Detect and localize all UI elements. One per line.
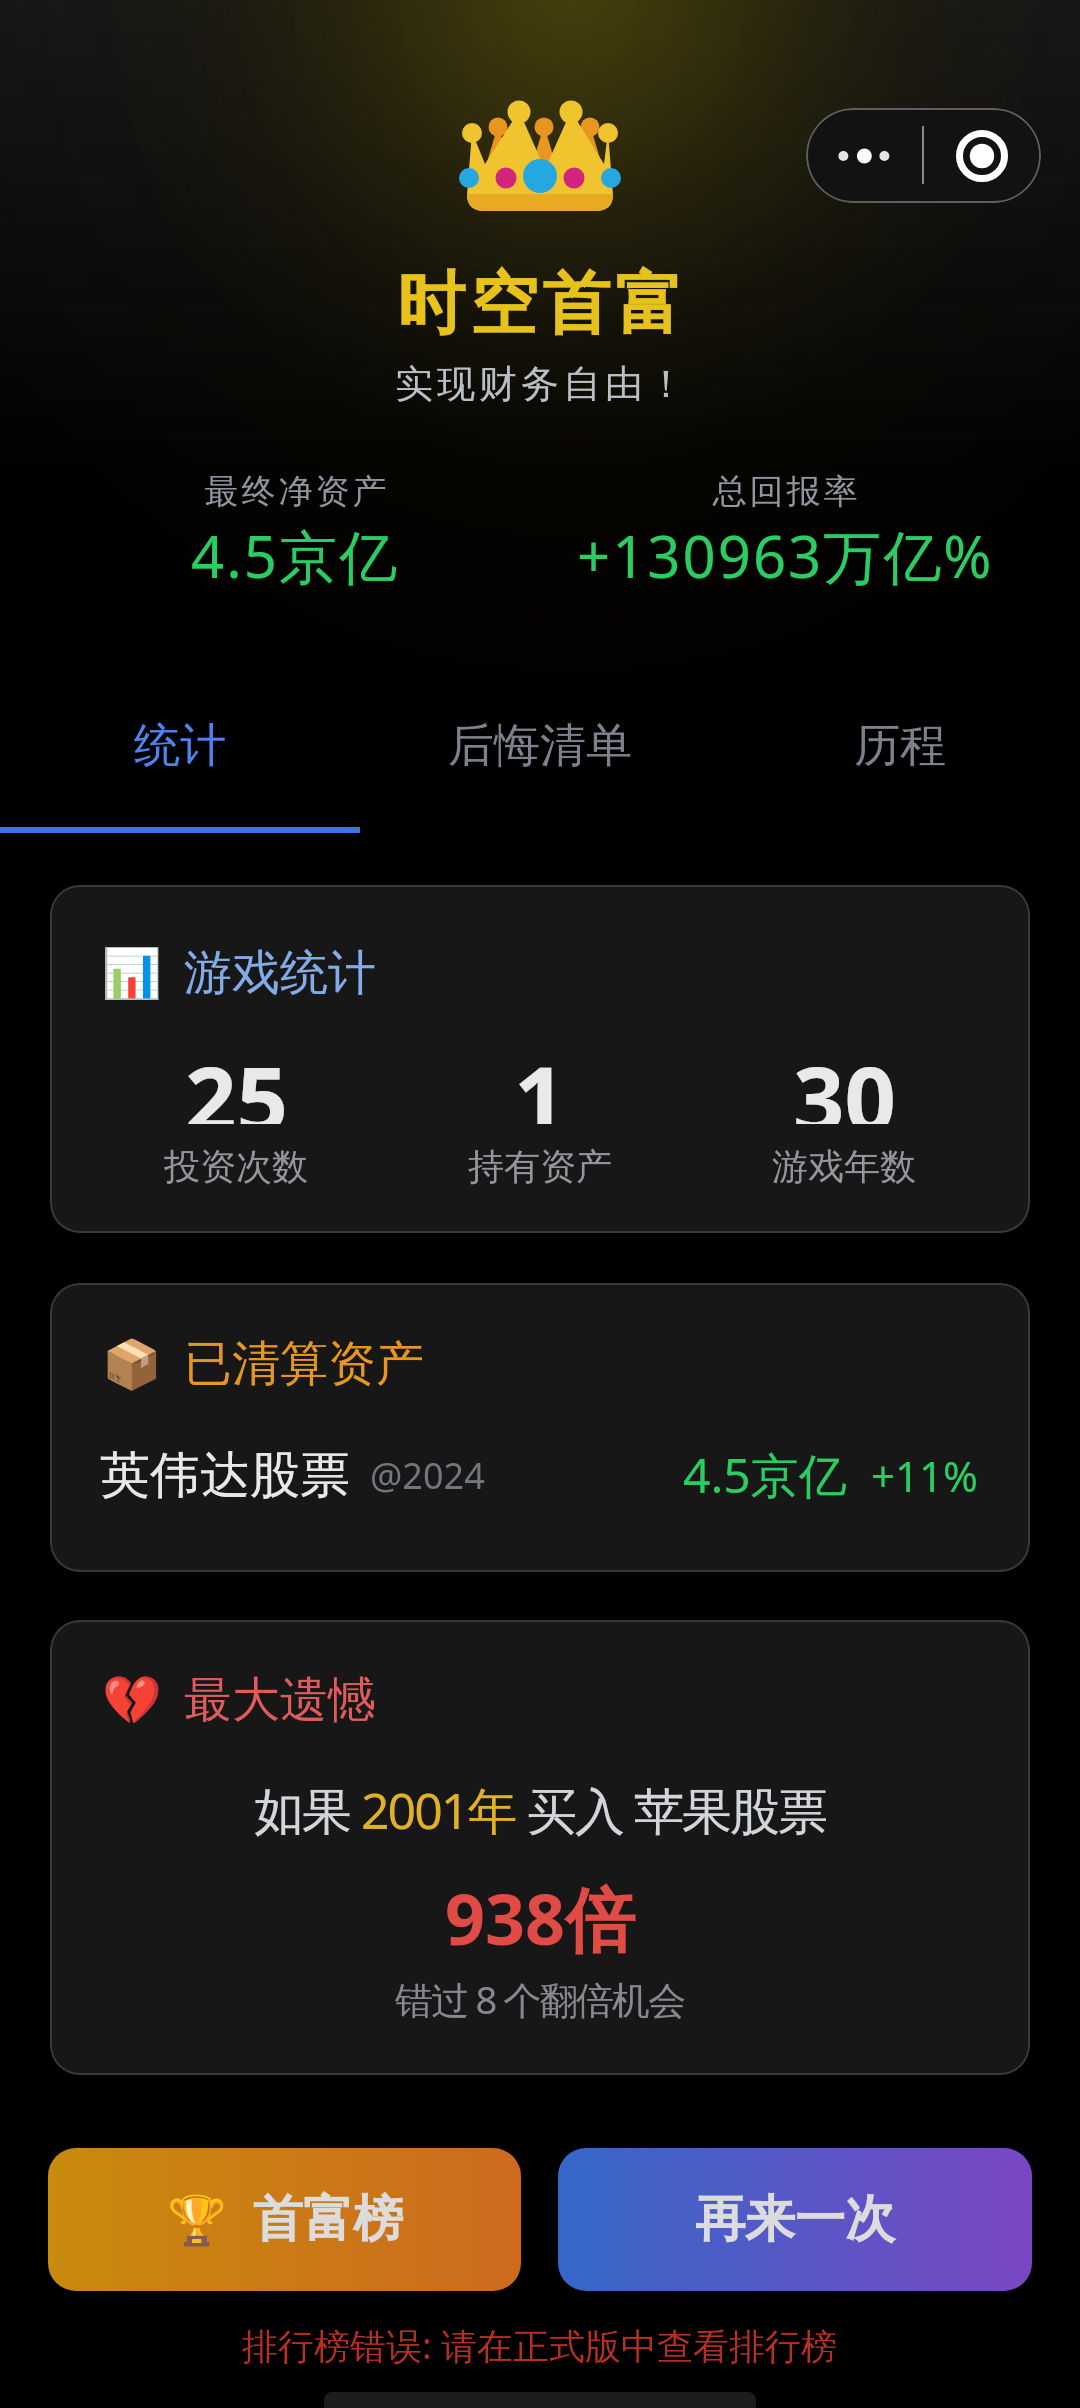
staticText: 如果 xyxy=(254,1776,361,1844)
staticText: 实现财务自由！ xyxy=(393,360,687,408)
staticText: 首富榜 xyxy=(253,2188,403,2251)
button[interactable]: 📊 xyxy=(50,885,1030,1233)
button[interactable]: 历程 xyxy=(720,690,1080,802)
staticText: 💔 xyxy=(102,1672,162,1728)
staticText: 4.5京亿 xyxy=(191,516,399,586)
staticText: 游戏年数 xyxy=(772,1144,916,1189)
staticText: 🏆 xyxy=(167,2192,227,2248)
staticText: +130963万亿% xyxy=(577,516,994,586)
staticText: 投资次数 xyxy=(164,1144,308,1189)
staticText: 📦 xyxy=(102,1336,162,1392)
button[interactable]: 🏆 xyxy=(48,2148,521,2291)
button[interactable]: 📦 xyxy=(50,1283,1030,1572)
staticText: 总回报率 xyxy=(711,470,859,513)
staticText: 最大遗憾 xyxy=(184,1670,376,1730)
staticText: 4.5京亿 xyxy=(683,1442,847,1508)
staticText: 时空首富 xyxy=(395,262,685,348)
staticText: 游戏统计 xyxy=(184,943,376,1003)
staticText: 后悔清单 xyxy=(448,717,632,775)
staticText: 排行榜错误: 请在正式版中查看排行榜 xyxy=(242,2321,838,2370)
staticText: 再来一次 xyxy=(695,2188,895,2251)
button[interactable]: 后悔清单 xyxy=(360,690,720,802)
staticText: @2024 xyxy=(370,1451,485,1500)
staticText: 📊 xyxy=(102,945,162,1001)
staticText: 30 xyxy=(793,1036,896,1124)
button[interactable]: 💔 xyxy=(50,1620,1030,2075)
staticText: 买入 苹果股票 xyxy=(516,1776,826,1844)
staticText: 938倍 xyxy=(445,1870,636,1966)
staticText: 最终净资产 xyxy=(203,470,388,513)
button[interactable]: 关闭 xyxy=(923,108,1041,203)
button[interactable]: 更多 xyxy=(806,108,923,203)
staticText: 英伟达股票 xyxy=(100,1444,350,1507)
staticText: 1 xyxy=(514,1036,566,1124)
staticText: 25 xyxy=(185,1036,288,1124)
staticText: 历程 xyxy=(854,717,946,775)
staticText: 错过 8 个翻倍机会 xyxy=(395,1973,685,2025)
button[interactable]: 统计 xyxy=(0,690,360,802)
button[interactable]: 再来一次 xyxy=(558,2148,1032,2291)
staticText: 持有资产 xyxy=(468,1144,612,1189)
staticText: 统计 xyxy=(134,717,226,775)
staticText: 已清算资产 xyxy=(184,1334,424,1394)
staticText: +11% xyxy=(871,1447,978,1504)
staticText: 2001年 xyxy=(361,1776,516,1844)
